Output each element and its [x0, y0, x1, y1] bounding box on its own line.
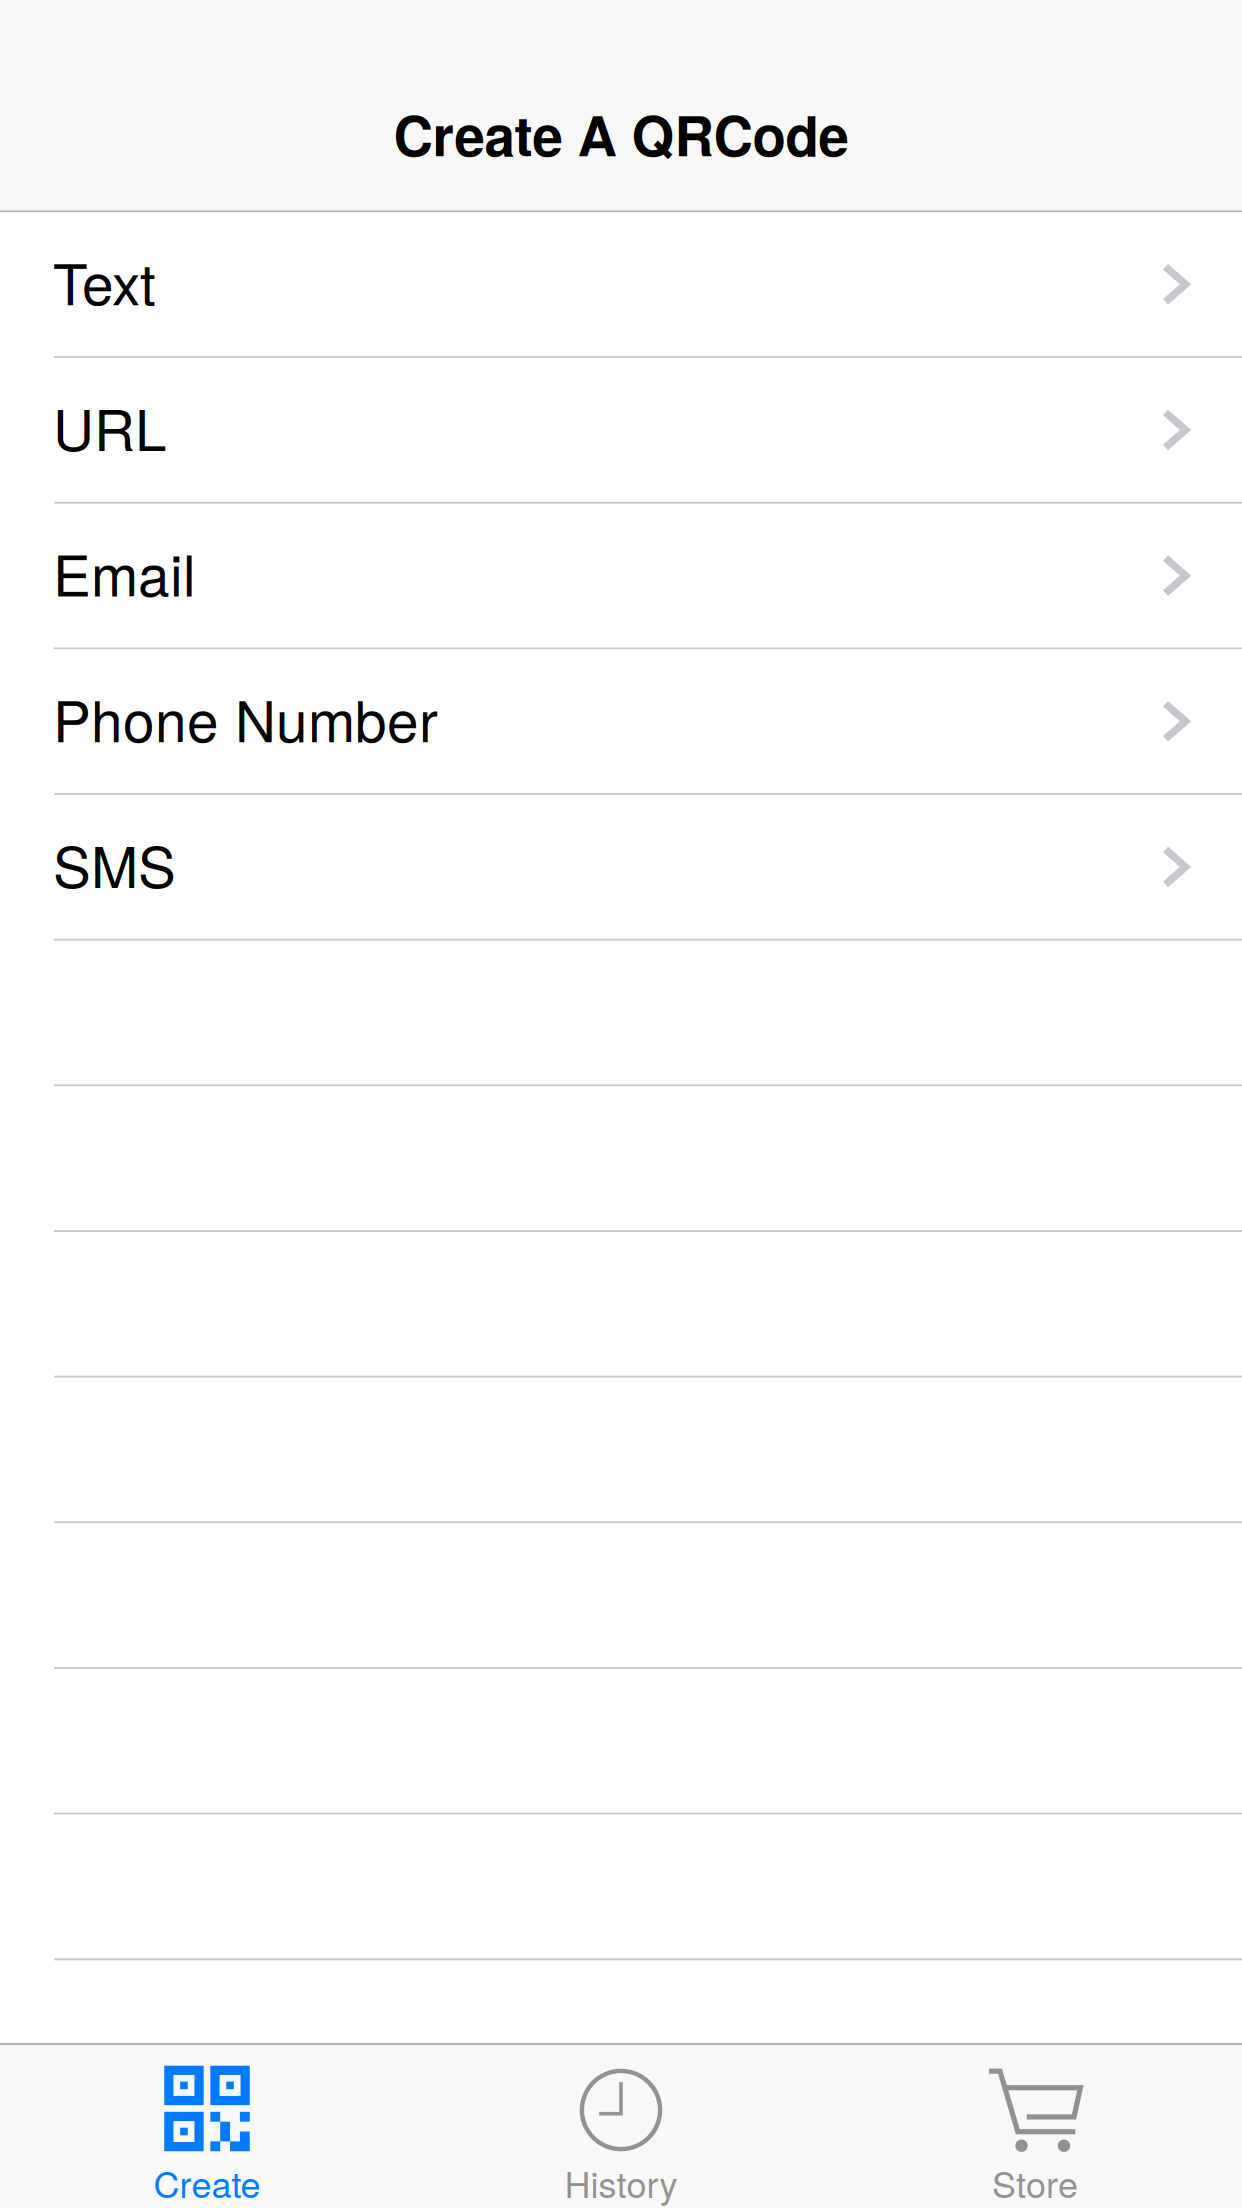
staticText: Phone Number — [53, 677, 438, 758]
button[interactable]: Text — [0, 212, 1242, 358]
staticText: Email — [53, 532, 196, 613]
button[interactable]: Store — [828, 2045, 1242, 2208]
staticText: Text — [53, 240, 156, 321]
staticText: Create A QRCode — [393, 95, 848, 173]
button[interactable]: SMS — [0, 795, 1242, 941]
button[interactable]: Create — [0, 2045, 414, 2208]
button[interactable]: Email — [0, 504, 1242, 649]
staticText: Create — [153, 2157, 260, 2208]
staticText: History — [564, 2157, 677, 2208]
staticText: SMS — [53, 823, 176, 904]
staticText: Store — [992, 2157, 1078, 2208]
button[interactable]: History — [414, 2045, 828, 2208]
staticText: URL — [53, 386, 167, 467]
button[interactable]: Phone Number — [0, 649, 1242, 795]
button[interactable]: URL — [0, 358, 1242, 504]
